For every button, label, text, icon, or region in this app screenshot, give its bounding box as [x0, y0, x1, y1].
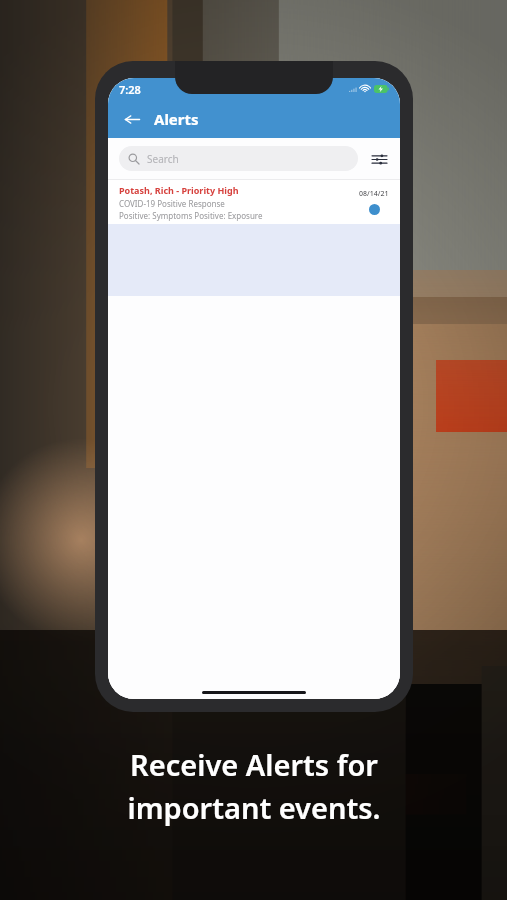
staticText: Receive Alerts for — [130, 745, 378, 784]
staticText: Search — [147, 152, 179, 166]
staticText: Positive: Symptoms Positive: Exposure — [119, 210, 263, 221]
staticText: Alerts — [154, 109, 199, 129]
staticText: COVID-19 Positive Response — [119, 198, 225, 209]
staticText: 7:28 — [119, 82, 141, 97]
staticText: important events. — [127, 788, 381, 827]
button[interactable]: Filter — [367, 147, 391, 171]
staticText: Potash, Rich - Priority High — [119, 184, 239, 196]
button[interactable]: Potash, Rich - Priority High — [108, 180, 400, 224]
staticText: 08/14/21 — [359, 189, 389, 199]
button[interactable]: Search — [119, 146, 358, 171]
button[interactable]: Back — [116, 103, 148, 135]
